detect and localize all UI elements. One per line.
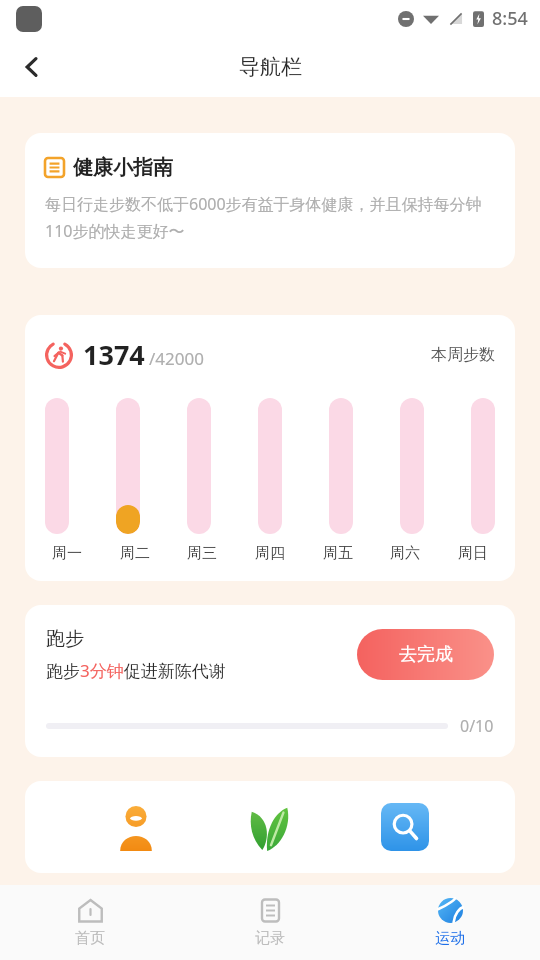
staticText: 跑步3分钟促进新陈代谢 <box>46 659 226 682</box>
staticText: 记录 <box>255 929 285 948</box>
staticText: 跑步 <box>46 627 84 651</box>
button[interactable]: 1374 <box>25 315 515 581</box>
staticText: 本周步数 <box>431 345 495 365</box>
staticText: 周日 <box>458 544 488 563</box>
other: Profile <box>112 803 160 851</box>
staticText: 运动 <box>435 929 465 948</box>
staticText: 去完成 <box>399 643 453 666</box>
button[interactable]: 首页 <box>0 885 180 960</box>
button[interactable]: Back <box>8 43 56 91</box>
button[interactable]: 运动 <box>360 885 540 960</box>
staticText: 周五 <box>323 544 353 563</box>
staticText: 周六 <box>390 544 420 563</box>
staticText: 8:54 <box>492 6 528 31</box>
button[interactable]: 健康小指南 <box>25 133 515 268</box>
other: Leaves <box>246 803 294 851</box>
staticText: 每日行走步数不低于6000步有益于身体健康，并且保持每分钟110步的快走更好〜 <box>45 193 495 242</box>
staticText: 周一 <box>52 544 82 563</box>
staticText: 首页 <box>75 929 105 948</box>
staticText: 周四 <box>255 544 285 563</box>
other: Search <box>381 803 429 851</box>
button[interactable]: 去完成 <box>357 629 494 680</box>
staticText: 0/10 <box>460 715 494 737</box>
staticText: /42000 <box>149 347 204 370</box>
button[interactable]: Profile <box>25 781 515 873</box>
staticText: 导航栏 <box>239 54 302 80</box>
staticText: 健康小指南 <box>73 155 173 180</box>
button[interactable]: 记录 <box>180 885 360 960</box>
staticText: 1374 <box>83 336 145 373</box>
button[interactable]: 跑步 <box>25 605 515 757</box>
staticText: 周二 <box>120 544 150 563</box>
staticText: 周三 <box>187 544 217 563</box>
